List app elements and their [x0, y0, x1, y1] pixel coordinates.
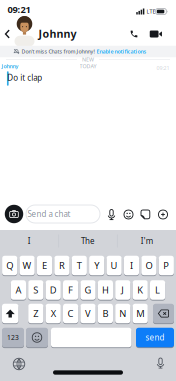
staticText: I'm	[141, 236, 153, 246]
staticText: send	[145, 332, 164, 343]
staticText: Johnny	[38, 26, 76, 41]
button[interactable]: Video call	[148, 27, 164, 41]
button[interactable]: Back	[1, 26, 13, 42]
staticText: Enable notifications	[96, 48, 146, 55]
staticText: O	[145, 259, 152, 272]
staticText: Johnny	[1, 63, 18, 70]
staticText: J	[121, 284, 124, 296]
staticText: E	[42, 259, 47, 272]
button[interactable]: J	[115, 280, 130, 300]
button[interactable]: D	[46, 280, 61, 300]
staticText: R	[59, 259, 65, 272]
button[interactable]: F	[63, 280, 78, 300]
button[interactable]: E	[37, 255, 52, 276]
button[interactable]: Next keyboard	[13, 358, 25, 370]
button[interactable]: I	[9, 233, 49, 249]
button[interactable]: 123	[2, 327, 24, 348]
staticText: C	[68, 307, 74, 320]
staticText: N	[119, 307, 126, 320]
button[interactable]: B	[98, 303, 113, 324]
staticText: 123	[7, 333, 19, 342]
button[interactable]: Send a chat	[26, 205, 100, 223]
button[interactable]: Shift	[2, 303, 18, 324]
staticText: S	[33, 284, 38, 296]
button[interactable]: Delete	[153, 303, 174, 324]
button[interactable]: Y	[89, 255, 104, 276]
button[interactable]: N	[115, 303, 130, 324]
button[interactable]: Camera	[5, 205, 23, 223]
staticText: V	[85, 307, 91, 320]
staticText: Don't miss Chats from Johnny!	[21, 48, 94, 55]
button[interactable]: P	[159, 255, 174, 276]
staticText: Send a chat	[27, 209, 70, 219]
button[interactable]: R	[54, 255, 69, 276]
button[interactable]: More	[158, 210, 167, 219]
staticText: M	[136, 307, 144, 320]
staticText: I	[130, 259, 133, 272]
button[interactable]: O	[141, 255, 156, 276]
button[interactable]: G	[80, 280, 96, 300]
button[interactable]: W	[19, 255, 35, 276]
button[interactable]: Call	[127, 27, 141, 41]
button[interactable]: Emoji	[124, 210, 133, 219]
button[interactable]: M	[133, 303, 148, 324]
staticText: 09:21	[156, 64, 169, 72]
button[interactable]: I'm	[127, 233, 167, 249]
button[interactable]: Space	[51, 327, 131, 348]
staticText: I	[28, 236, 31, 246]
button[interactable]: C	[63, 303, 78, 324]
button[interactable]: V	[80, 303, 96, 324]
button[interactable]: K	[133, 280, 148, 300]
staticText: The	[81, 236, 95, 246]
staticText: Do it clap	[7, 72, 42, 83]
button[interactable]: L	[150, 280, 165, 300]
staticText: H	[102, 284, 109, 296]
button[interactable]: H	[98, 280, 113, 300]
staticText: K	[137, 284, 143, 296]
staticText: Q	[6, 259, 13, 272]
staticText: B	[102, 307, 108, 320]
staticText: 09:21	[7, 3, 30, 16]
button[interactable]: U	[106, 255, 122, 276]
button[interactable]: The	[68, 233, 108, 249]
button[interactable]: I	[124, 255, 139, 276]
staticText: Y	[94, 259, 99, 272]
staticText: NEW	[82, 56, 94, 63]
staticText: G	[84, 284, 91, 296]
button[interactable]: Z	[28, 303, 43, 324]
staticText: A	[15, 284, 21, 296]
staticText: Z	[33, 307, 38, 320]
button[interactable]: X	[46, 303, 61, 324]
staticText: U	[111, 259, 118, 272]
staticText: P	[163, 259, 169, 272]
button[interactable]: T	[72, 255, 87, 276]
button[interactable]: Emoji	[26, 327, 48, 348]
staticText: W	[23, 259, 32, 272]
staticText: T	[77, 259, 82, 272]
button[interactable]: S	[28, 280, 43, 300]
button[interactable]: Q	[2, 255, 17, 276]
staticText: L	[155, 284, 160, 296]
staticText: F	[68, 284, 73, 296]
button[interactable]: A	[11, 280, 26, 300]
button[interactable]: Voice message	[107, 209, 116, 220]
button[interactable]: Dictation	[156, 357, 165, 368]
button[interactable]: send	[136, 327, 174, 348]
staticText: TODAY	[79, 63, 96, 70]
staticText: X	[51, 307, 56, 320]
button[interactable]: Don't miss Chats from Johnny!	[13, 48, 146, 55]
staticText: D	[50, 284, 57, 296]
staticText: LTE	[146, 8, 155, 15]
button[interactable]: Stickers	[141, 210, 150, 219]
button[interactable]: Johnny	[13, 16, 76, 47]
